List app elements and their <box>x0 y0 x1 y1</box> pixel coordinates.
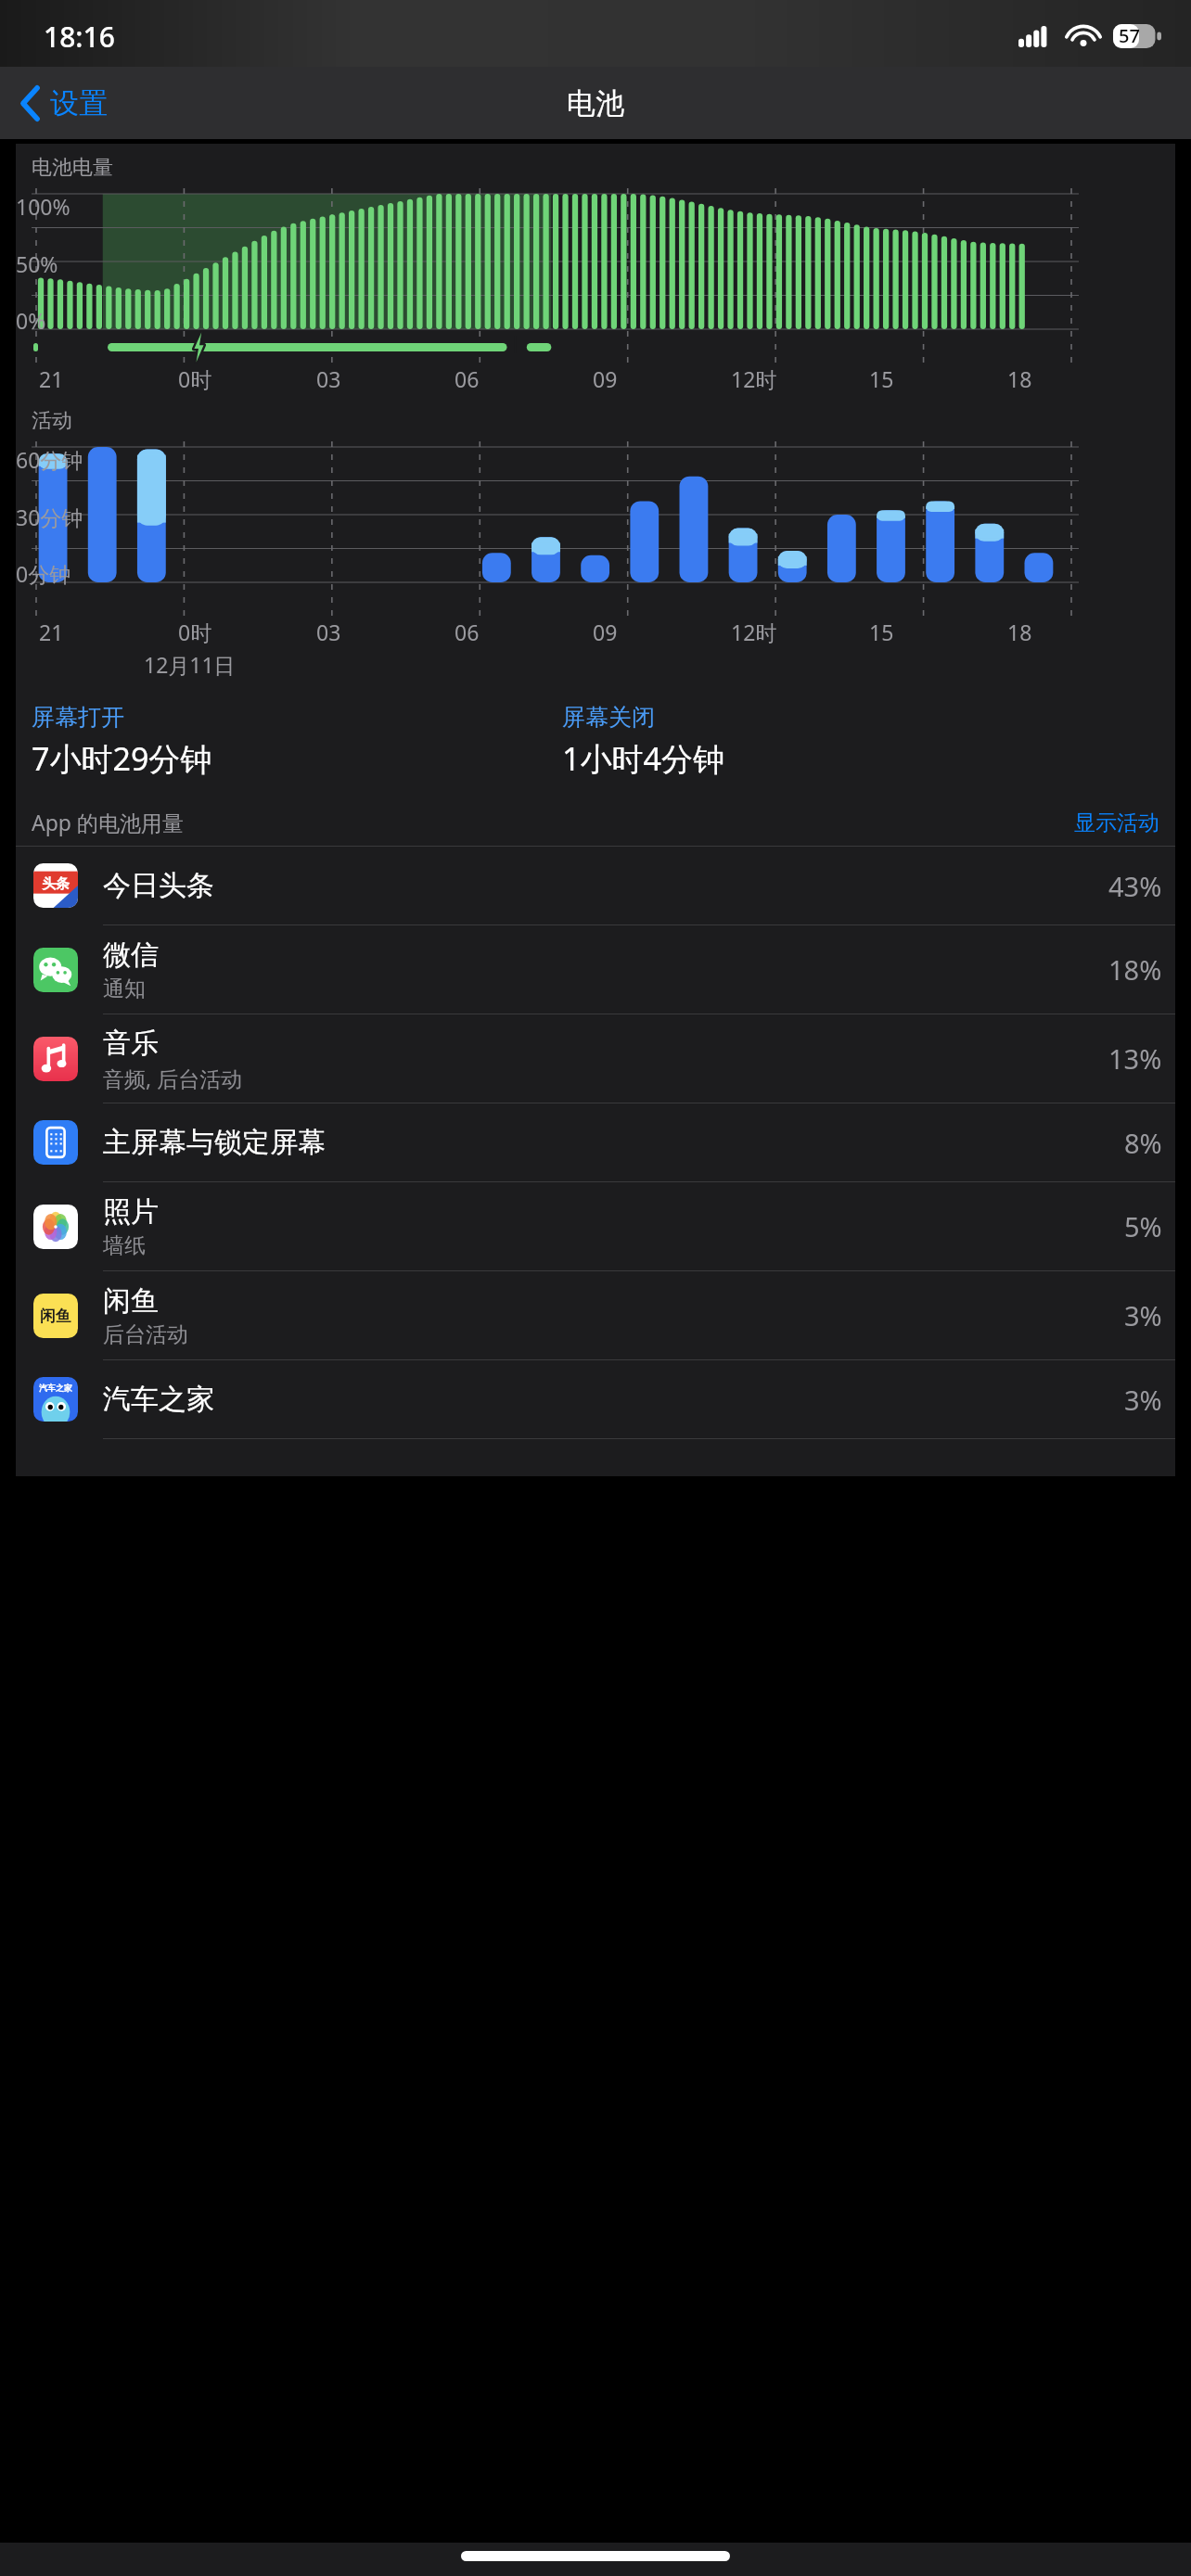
staticText: 墙纸 <box>103 1232 146 1259</box>
staticText: 闲鱼 <box>40 1307 71 1326</box>
button[interactable]: 音乐 <box>16 1014 1175 1103</box>
staticText: 50% <box>16 249 58 278</box>
staticText: 18 <box>1007 364 1032 393</box>
staticText: 主屏幕与锁定屏幕 <box>103 1125 326 1160</box>
staticText: 15 <box>869 618 894 646</box>
staticText: 7小时29分钟 <box>32 737 212 780</box>
staticText: 03 <box>316 364 341 393</box>
staticText: 06 <box>455 364 480 393</box>
staticText: 18:16 <box>44 18 115 56</box>
staticText: 通知 <box>103 976 146 1002</box>
staticText: 100% <box>16 192 70 221</box>
staticText: 屏幕关闭 <box>562 703 655 732</box>
staticText: 12时 <box>731 618 777 646</box>
staticText: 30分钟 <box>16 503 83 531</box>
button[interactable]: 头条 <box>16 847 1175 925</box>
staticText: 0时 <box>178 364 212 393</box>
staticText: 43% <box>1108 868 1162 904</box>
staticText: 音乐 <box>103 1026 159 1061</box>
staticText: 头条 <box>42 875 70 893</box>
staticText: 显示活动 <box>1074 810 1159 836</box>
staticText: 57 <box>1119 23 1140 47</box>
button[interactable]: 显示活动 <box>1074 810 1159 836</box>
staticText: 音频, 后台活动 <box>103 1064 243 1092</box>
staticText: 18% <box>1108 951 1162 988</box>
staticText: 0分钟 <box>16 559 71 588</box>
staticText: 21 <box>39 618 64 646</box>
other: Back <box>20 86 40 121</box>
staticText: 15 <box>869 364 894 393</box>
staticText: 12月11日 <box>144 650 236 679</box>
staticText: 3% <box>1124 1297 1162 1333</box>
button[interactable]: 闲鱼 <box>16 1271 1175 1359</box>
button[interactable]: 汽车之家 <box>16 1360 1175 1438</box>
staticText: 闲鱼 <box>103 1283 159 1319</box>
staticText: 8% <box>1124 1125 1162 1161</box>
staticText: 后台活动 <box>103 1321 188 1348</box>
staticText: 活动 <box>32 408 72 434</box>
staticText: 3% <box>1124 1382 1162 1418</box>
staticText: 13% <box>1108 1040 1162 1077</box>
staticText: 照片 <box>103 1194 159 1230</box>
button[interactable]: 照片 <box>16 1182 1175 1270</box>
staticText: 汽车之家 <box>39 1383 72 1393</box>
staticText: 5% <box>1124 1208 1162 1244</box>
button[interactable]: 微信 <box>16 925 1175 1014</box>
staticText: 0时 <box>178 618 212 646</box>
staticText: 微信 <box>103 937 159 973</box>
staticText: 03 <box>316 618 341 646</box>
button[interactable]: 主屏幕与锁定屏幕 <box>16 1103 1175 1181</box>
staticText: 12时 <box>731 364 777 393</box>
staticText: 设置 <box>50 85 108 121</box>
staticText: 汽车之家 <box>103 1382 214 1417</box>
staticText: 21 <box>39 364 64 393</box>
staticText: 09 <box>593 618 618 646</box>
staticText: 今日头条 <box>103 868 214 903</box>
staticText: 屏幕打开 <box>32 703 124 732</box>
staticText: 0% <box>16 306 46 335</box>
staticText: 60分钟 <box>16 445 83 474</box>
staticText: 18 <box>1007 618 1032 646</box>
staticText: 1小时4分钟 <box>562 737 724 780</box>
staticText: 电池 <box>567 85 624 121</box>
staticText: 电池电量 <box>32 155 113 181</box>
staticText: 09 <box>593 364 618 393</box>
staticText: App 的电池用量 <box>32 808 184 836</box>
staticText: 06 <box>455 618 480 646</box>
button[interactable]: Back <box>15 78 113 129</box>
